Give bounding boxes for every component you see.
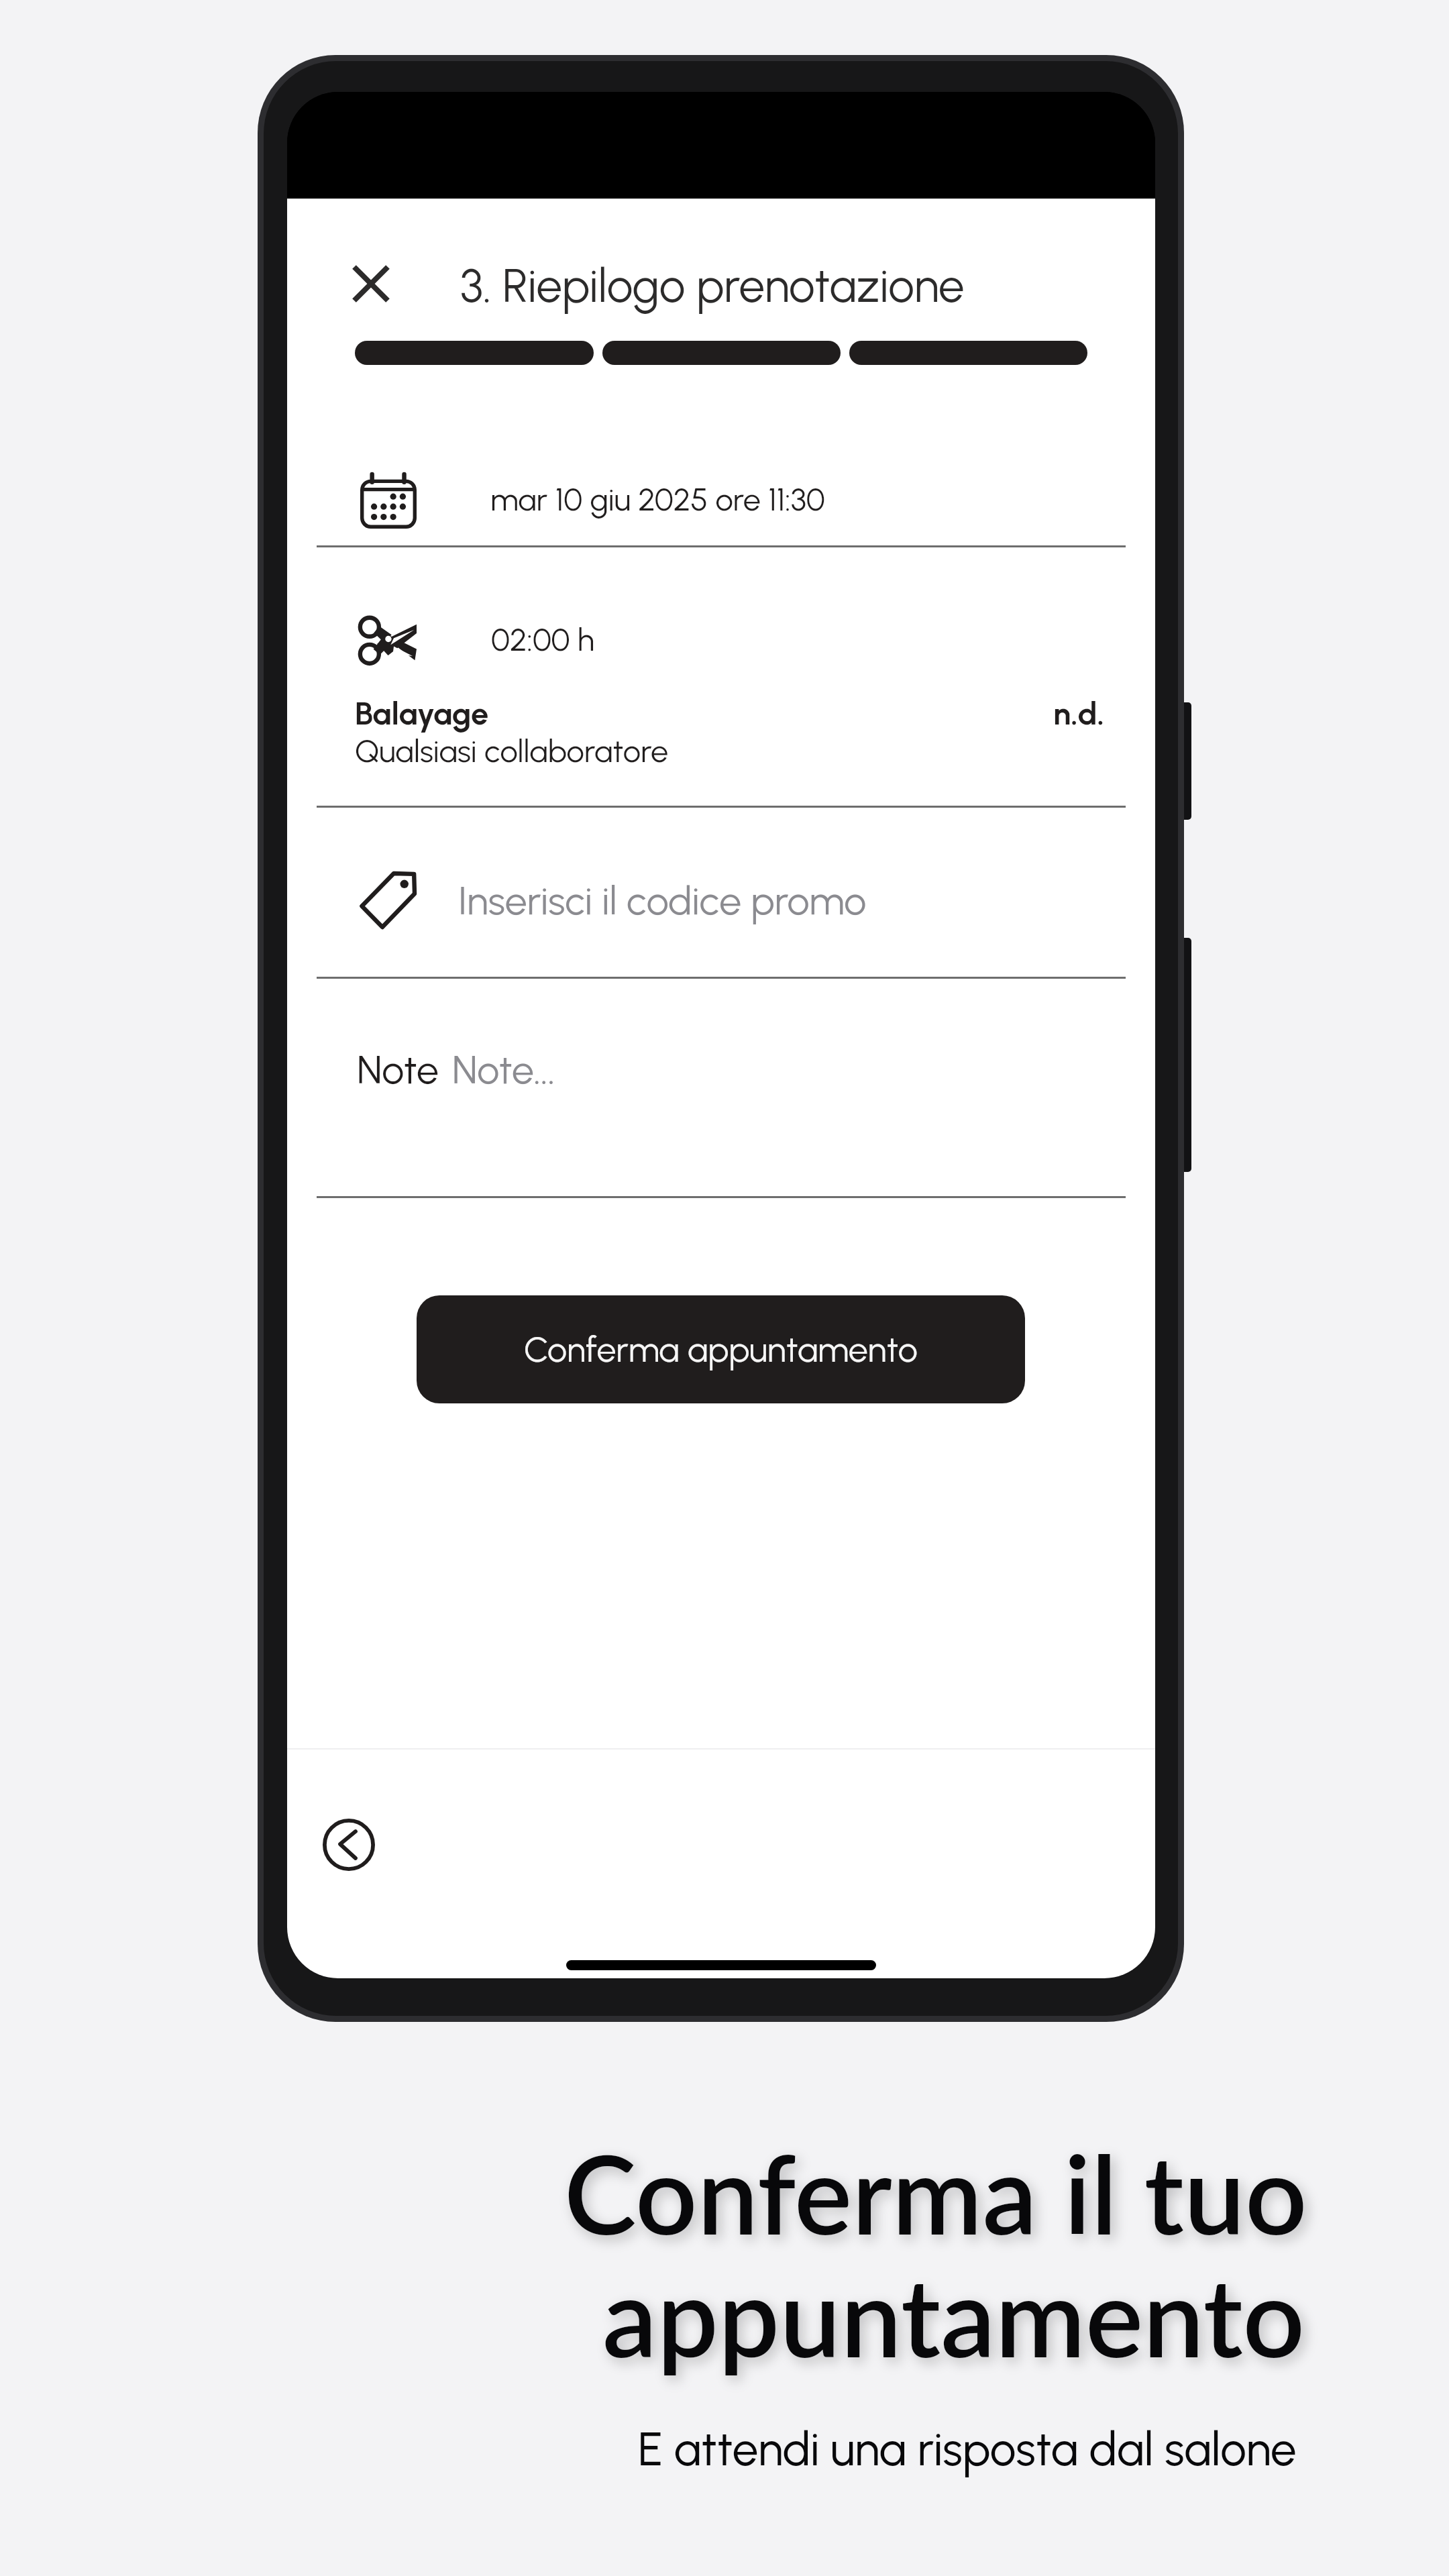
button[interactable]: Inserisci il codice promo — [317, 839, 1125, 977]
button[interactable]: Balayage, qualsiasi collaboratore — [317, 577, 1125, 804]
staticText: appuntamento — [602, 2250, 1305, 2380]
staticText: n.d. — [1053, 694, 1105, 732]
staticText: Note — [357, 1046, 439, 1093]
button[interactable]: Conferma appuntamento — [417, 1295, 1025, 1403]
staticText: Qualsiasi collaboratore — [355, 732, 669, 769]
staticText: mar 10 giu 2025 ore 11:30 — [490, 480, 825, 518]
staticText: Conferma il tuo — [564, 2127, 1307, 2257]
staticText: Conferma appuntamento — [524, 1329, 918, 1371]
staticText: Balayage — [355, 694, 489, 732]
button[interactable] — [355, 341, 594, 365]
staticText: 02:00 h — [491, 621, 595, 658]
staticText: E attendi una risposta dal salone — [638, 2421, 1297, 2477]
button[interactable]: Note — [317, 1006, 1125, 1196]
button[interactable]: Indietro — [315, 1811, 383, 1879]
staticText: Inserisci il codice promo — [458, 877, 867, 924]
staticText: 3. Riepilogo prenotazione — [460, 258, 965, 313]
button[interactable]: Chiudi — [338, 251, 404, 317]
staticText: Note... — [452, 1046, 555, 1093]
button[interactable] — [849, 341, 1087, 365]
button[interactable] — [602, 341, 841, 365]
button[interactable]: mar 10 giu 2025 ore 11:30 — [317, 443, 1125, 543]
